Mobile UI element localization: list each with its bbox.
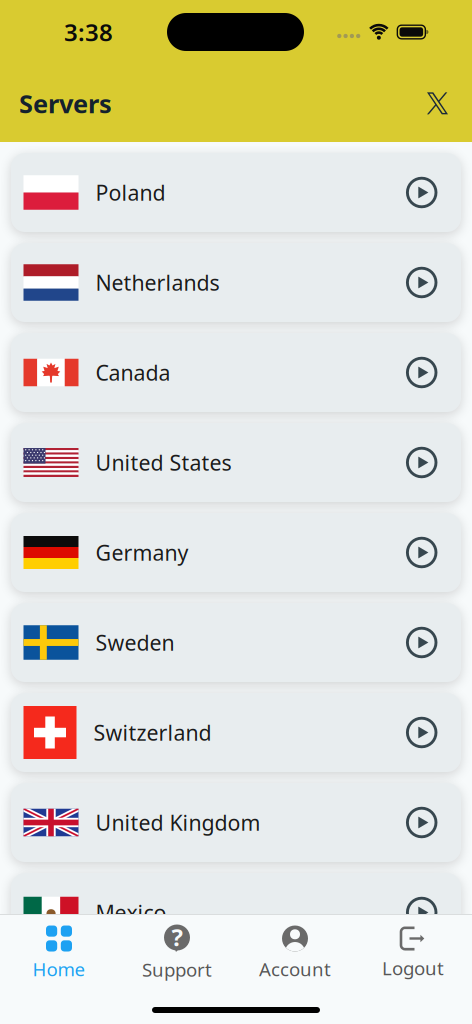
staticText: Support	[142, 957, 212, 982]
button[interactable]: Share on X	[427, 92, 448, 114]
button[interactable]: Mexico	[11, 873, 461, 952]
button[interactable]: Home	[0, 925, 118, 981]
staticText: Servers	[19, 86, 112, 120]
staticText: Mexico	[95, 898, 166, 927]
button[interactable]: Account	[236, 925, 354, 981]
staticText: Home	[32, 956, 85, 981]
button[interactable]: United States	[11, 423, 461, 502]
button[interactable]: Sweden	[11, 603, 461, 682]
staticText: Canada	[95, 358, 170, 387]
button[interactable]: ?	[118, 925, 236, 982]
button[interactable]: Canada	[11, 333, 461, 412]
staticText: Account	[259, 956, 331, 981]
staticText: Sweden	[95, 628, 174, 657]
staticText: ?	[171, 921, 182, 953]
button[interactable]: Germany	[11, 513, 461, 592]
staticText: Logout	[382, 955, 444, 980]
button[interactable]: Poland	[11, 153, 461, 232]
staticText: United Kingdom	[95, 808, 260, 837]
staticText: 3:38	[64, 16, 113, 48]
staticText: United States	[95, 448, 231, 477]
staticText: Poland	[95, 178, 165, 207]
button[interactable]: United Kingdom	[11, 783, 461, 862]
button[interactable]: Switzerland	[11, 693, 461, 772]
button[interactable]: Netherlands	[11, 243, 461, 322]
staticText: Switzerland	[93, 718, 211, 747]
staticText: Germany	[95, 538, 188, 567]
staticText: Netherlands	[95, 268, 219, 297]
button[interactable]: Logout	[354, 926, 472, 980]
